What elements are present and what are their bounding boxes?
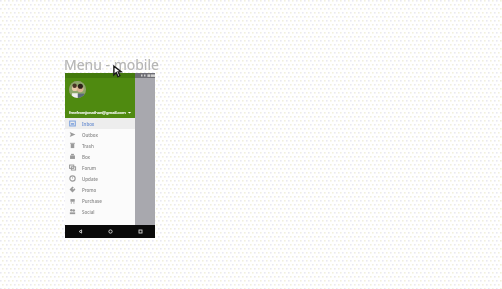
staticText: Trash	[82, 143, 94, 149]
button[interactable]: Home	[95, 225, 125, 238]
staticText: Inbox	[82, 121, 95, 127]
button[interactable]: Purchase	[65, 195, 135, 206]
button[interactable]: Forum	[65, 162, 135, 173]
button[interactable]: Trash	[65, 140, 135, 151]
button[interactable]: Promo	[65, 184, 135, 195]
button[interactable]: Box	[65, 151, 135, 162]
button[interactable]: Account avatar	[69, 81, 86, 98]
button[interactable]: Update	[65, 173, 135, 184]
button[interactable]: Social	[65, 206, 135, 217]
button[interactable]: Outbox	[65, 129, 135, 140]
staticText: Promo	[82, 187, 97, 193]
button[interactable]: Recents	[125, 225, 155, 238]
staticText: Update	[82, 176, 98, 182]
button[interactable]: freefromjonathan@gmail.com	[65, 107, 135, 117]
staticText: freefromjonathan@gmail.com	[69, 110, 127, 115]
staticText: Menu - mobile	[64, 55, 159, 74]
button[interactable]: Account avatar	[65, 73, 135, 118]
button[interactable]: Back	[65, 225, 95, 238]
staticText: Social	[82, 209, 95, 215]
staticText: Outbox	[82, 132, 98, 138]
button[interactable]: Inbox	[65, 118, 135, 129]
staticText: Forum	[82, 165, 97, 171]
staticText: Purchase	[82, 198, 102, 204]
staticText: Box	[82, 154, 91, 160]
